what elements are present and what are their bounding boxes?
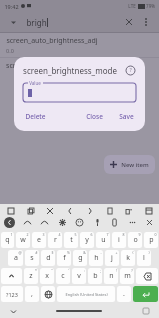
staticText: English (United States) (65, 292, 108, 297)
staticText: w (20, 235, 26, 245)
button[interactable]: v (72, 268, 86, 284)
button[interactable]: m (120, 268, 134, 284)
staticText: f (63, 253, 66, 263)
button[interactable]: Dropdown (6, 15, 20, 29)
staticText: 7 (106, 232, 109, 237)
button[interactable]: j (105, 250, 119, 266)
button[interactable]: Action 5 (92, 217, 103, 228)
button[interactable]: . (117, 286, 131, 302)
button[interactable]: o (128, 232, 142, 248)
button[interactable]: Delete (23, 110, 48, 123)
button[interactable]: t (64, 232, 78, 248)
button[interactable]: Help (124, 64, 136, 76)
staticText: * (35, 268, 37, 273)
staticText: p (149, 235, 154, 245)
button[interactable]: More options (139, 15, 153, 29)
staticText: brigh (26, 17, 47, 28)
button[interactable]: Tool 3 (44, 205, 55, 216)
staticText: 9 (138, 232, 141, 237)
button[interactable]: Action 7 (127, 217, 138, 228)
staticText: LTE (128, 3, 136, 9)
button[interactable]: s (25, 250, 39, 266)
staticText: d (46, 253, 51, 263)
button[interactable]: screen_auto_brightness_adj (0, 33, 159, 57)
button[interactable]: k (121, 250, 135, 266)
button[interactable]: b (88, 268, 102, 284)
button[interactable]: Keyboard settings (141, 306, 151, 316)
staticText: z (29, 271, 33, 281)
button[interactable]: Change language (41, 286, 55, 302)
staticText: 8 (122, 232, 125, 237)
button[interactable]: p (144, 232, 158, 248)
button[interactable]: English (United States) (57, 286, 115, 302)
staticText: ( (132, 250, 134, 255)
button[interactable]: y (80, 232, 94, 248)
button[interactable]: Action 4 (74, 217, 85, 228)
button[interactable]: x (40, 268, 54, 284)
staticText: 2 (26, 232, 29, 237)
button[interactable]: i (112, 232, 126, 248)
staticText: & (83, 250, 86, 255)
staticText: 79% (146, 3, 155, 9)
staticText: 6 (90, 232, 93, 237)
button[interactable]: ?123 (1, 286, 23, 302)
staticText: j (111, 253, 113, 263)
button[interactable]: Back (4, 217, 15, 228)
button[interactable]: Shift (1, 268, 22, 284)
button[interactable]: Action 6 (109, 217, 120, 228)
button[interactable]: r (48, 232, 62, 248)
button[interactable]: l (137, 250, 151, 266)
staticText: ! (116, 268, 117, 273)
button[interactable]: Action 1 (22, 217, 33, 228)
staticText: 3 (42, 232, 45, 237)
button[interactable]: Close toolbar (144, 217, 155, 228)
button[interactable]: Tool 7 (123, 205, 134, 216)
button[interactable]: Clear (122, 15, 136, 29)
button[interactable]: New item (104, 155, 155, 174)
staticText: 4 (58, 232, 61, 237)
button[interactable]: Tool 5 (84, 205, 95, 216)
button[interactable]: Tool 4 (64, 205, 75, 216)
staticText: b (93, 271, 98, 281)
button[interactable]: Save (117, 110, 136, 123)
button[interactable]: w (16, 232, 30, 248)
button[interactable]: z (24, 268, 38, 284)
button[interactable]: Enter (133, 286, 158, 302)
button[interactable]: u (96, 232, 110, 248)
staticText: ) (148, 250, 150, 255)
staticText: 19:42 (4, 3, 19, 10)
button[interactable]: n (104, 268, 118, 284)
staticText: 0.0 (6, 47, 14, 54)
button[interactable]: q (1, 232, 14, 248)
button[interactable]: Tool 1 (5, 205, 16, 216)
staticText: ? (129, 67, 132, 74)
staticText: r (54, 235, 57, 245)
staticText: ; (100, 268, 101, 273)
button[interactable]: , (25, 286, 39, 302)
button[interactable]: c (56, 268, 70, 284)
button[interactable]: Backspace (136, 268, 158, 284)
staticText: ' (68, 268, 69, 273)
button[interactable]: f (57, 250, 71, 266)
button[interactable]: Tool 6 (104, 205, 115, 216)
button[interactable]: Close (84, 110, 105, 123)
button[interactable]: Tool 8 (143, 205, 154, 216)
staticText: s (30, 253, 34, 263)
staticText: e (37, 235, 41, 245)
staticText: v (77, 271, 81, 281)
staticText: screen_auto_brightness_adj (6, 36, 98, 46)
button[interactable]: h (89, 250, 103, 266)
button[interactable]: Action 2 (39, 217, 50, 228)
button[interactable]: Hide keyboard (8, 306, 18, 316)
button[interactable]: Action 3 (57, 217, 68, 228)
staticText: x (45, 271, 49, 281)
staticText: ? (131, 268, 133, 273)
button[interactable]: e (32, 232, 46, 248)
button[interactable]: screen_brightness (0, 58, 159, 74)
staticText: k (126, 253, 130, 263)
button[interactable]: d (41, 250, 55, 266)
staticText: + (115, 250, 118, 255)
button[interactable]: Tool 2 (25, 205, 36, 216)
button[interactable]: a (8, 250, 23, 266)
button[interactable]: g (73, 250, 87, 266)
